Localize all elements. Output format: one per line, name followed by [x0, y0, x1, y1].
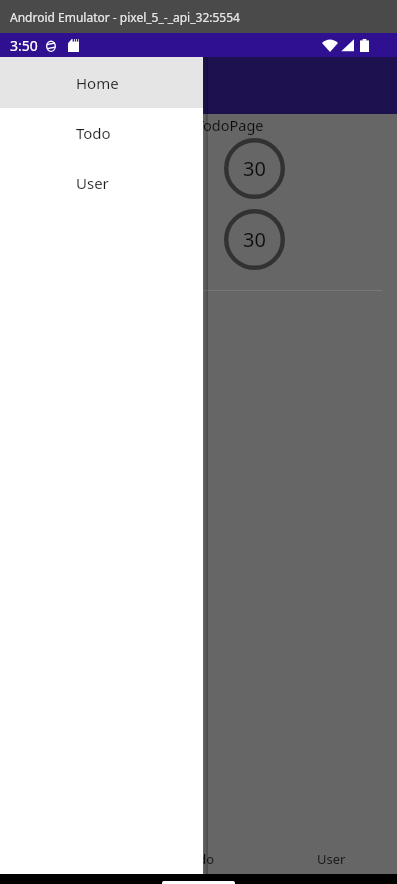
staticText: Todo [76, 123, 111, 143]
staticText: Android Emulator - pixel_5_-_api_32:5554 [10, 9, 240, 25]
staticText: 30 [243, 155, 266, 182]
button[interactable]: Todo [133, 819, 265, 875]
staticText: User [317, 850, 346, 868]
button[interactable]: Close navigation drawer [0, 33, 397, 884]
other: Timer [46, 40, 56, 52]
button[interactable]: User [265, 819, 397, 875]
staticText: 3:50 [10, 36, 38, 55]
button[interactable]: Todo [0, 108, 203, 158]
staticText: Home [76, 73, 119, 93]
staticText: TodoPage [196, 115, 264, 135]
button[interactable]: Counter [224, 209, 285, 270]
button[interactable]: Home [0, 819, 133, 875]
button[interactable]: Counter [224, 138, 285, 199]
other: Signal [341, 39, 354, 52]
button[interactable]: Home [0, 57, 203, 108]
other: Battery [360, 39, 369, 52]
other: SD card [68, 39, 79, 52]
staticText: 30 [243, 226, 266, 253]
staticText: User [76, 173, 109, 193]
staticText: Todo [184, 850, 215, 868]
button[interactable]: User [0, 158, 203, 208]
other: Wi-Fi [322, 39, 338, 52]
